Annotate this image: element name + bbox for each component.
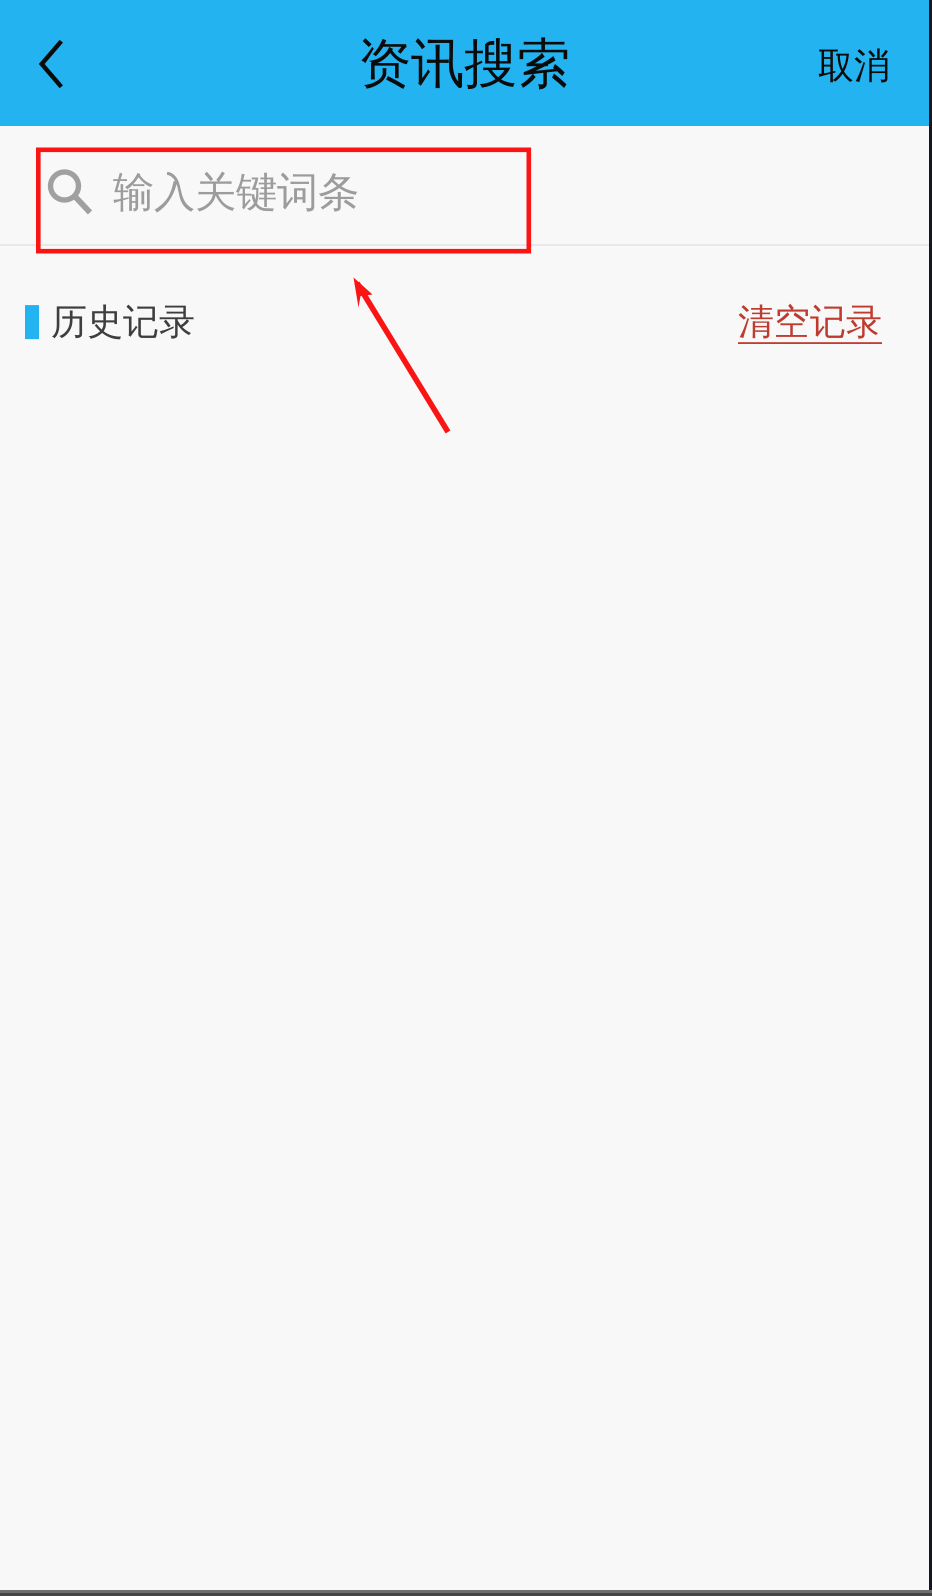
staticText: 输入关键词条 [113, 167, 359, 218]
staticText: 历史记录 [51, 300, 195, 344]
staticText: 取消 [818, 44, 890, 88]
button[interactable]: 输入关键词条 [0, 126, 932, 244]
button[interactable]: 清空记录 [738, 300, 932, 344]
button[interactable]: Back [0, 0, 103, 126]
button[interactable]: 取消 [768, 0, 932, 126]
staticText: 清空记录 [738, 300, 882, 344]
staticText: 资讯搜索 [358, 31, 570, 97]
